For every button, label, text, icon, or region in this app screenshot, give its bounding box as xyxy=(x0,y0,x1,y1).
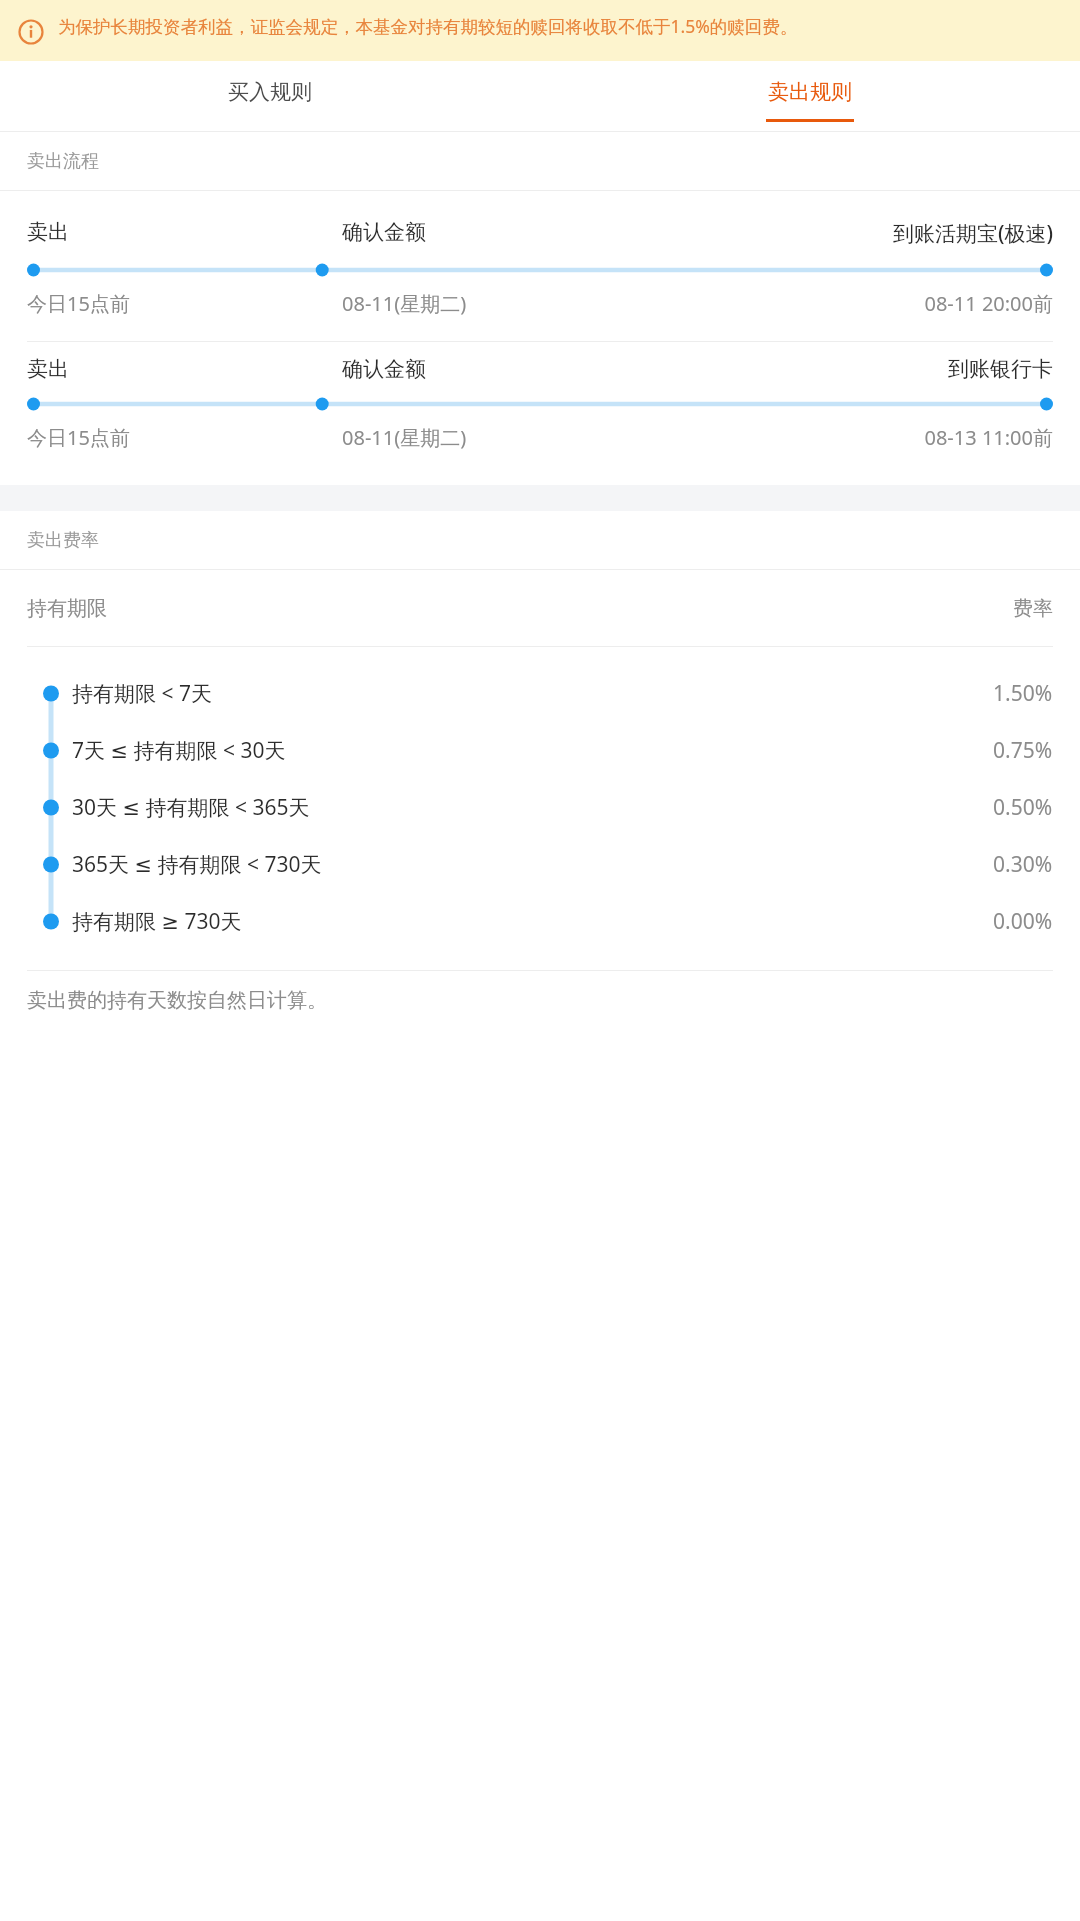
staticText: 今日15点前 xyxy=(27,424,342,451)
button[interactable]: 卖出规则 xyxy=(540,61,1080,131)
button[interactable]: 持有期限 < 7天 xyxy=(0,665,1080,722)
staticText: 0.30% xyxy=(993,850,1053,879)
staticText: 持有期限 ≥ 730天 xyxy=(72,907,993,936)
staticText: 08-11 20:00前 xyxy=(658,290,1053,317)
staticText: 0.00% xyxy=(993,907,1053,936)
staticText: 卖出 xyxy=(27,219,342,245)
staticText: 08-11(星期二) xyxy=(342,290,658,317)
staticText: 08-13 11:00前 xyxy=(658,424,1053,451)
staticText: 卖出流程 xyxy=(27,150,99,173)
staticText: 持有期限 < 7天 xyxy=(72,679,993,708)
button[interactable]: 365天 ≤ 持有期限 < 730天 xyxy=(0,836,1080,893)
button[interactable]: 买入规则 xyxy=(0,61,540,131)
staticText: 为保护长期投资者利益，证监会规定，本基金对持有期较短的赎回将收取不低于1.5%的… xyxy=(58,14,798,38)
staticText: 0.75% xyxy=(993,736,1053,765)
staticText: 费率 xyxy=(1013,596,1053,621)
staticText: 买入规则 xyxy=(228,79,312,105)
staticText: 卖出规则 xyxy=(768,79,852,105)
staticText: 卖出 xyxy=(27,356,342,382)
button[interactable]: 持有期限 ≥ 730天 xyxy=(0,893,1080,950)
staticText: 确认金额 xyxy=(342,356,658,382)
staticText: 0.50% xyxy=(993,793,1053,822)
button[interactable]: 7天 ≤ 持有期限 < 30天 xyxy=(0,722,1080,779)
staticText: 365天 ≤ 持有期限 < 730天 xyxy=(72,850,993,879)
staticText: 今日15点前 xyxy=(27,290,342,317)
staticText: 到账活期宝(极速) xyxy=(658,219,1053,248)
staticText: 卖出费率 xyxy=(27,529,99,552)
staticText: 7天 ≤ 持有期限 < 30天 xyxy=(72,736,993,765)
staticText: 持有期限 xyxy=(27,596,1013,621)
staticText: 1.50% xyxy=(993,679,1053,708)
staticText: 08-11(星期二) xyxy=(342,424,658,451)
staticText: 到账银行卡 xyxy=(658,356,1053,382)
other: Information xyxy=(18,19,44,45)
button[interactable]: 30天 ≤ 持有期限 < 365天 xyxy=(0,779,1080,836)
staticText: 卖出费的持有天数按自然日计算。 xyxy=(27,988,327,1013)
staticText: 30天 ≤ 持有期限 < 365天 xyxy=(72,793,993,822)
staticText: 确认金额 xyxy=(342,219,658,245)
